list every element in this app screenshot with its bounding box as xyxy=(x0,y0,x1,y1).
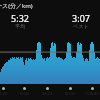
staticText: ベスト xyxy=(73,23,89,29)
staticText: 33:22 xyxy=(35,91,59,96)
staticText: 0:30 xyxy=(0,91,15,96)
staticText: 50:02 xyxy=(58,91,82,96)
staticText: 16:43 xyxy=(12,91,36,96)
staticText: 平均 xyxy=(15,23,25,29)
staticText: 1:06:40 xyxy=(80,91,100,96)
staticText: ース(分／km) xyxy=(0,2,33,10)
staticText: 3:07 xyxy=(72,12,90,24)
staticText: 5:32 xyxy=(11,12,29,24)
